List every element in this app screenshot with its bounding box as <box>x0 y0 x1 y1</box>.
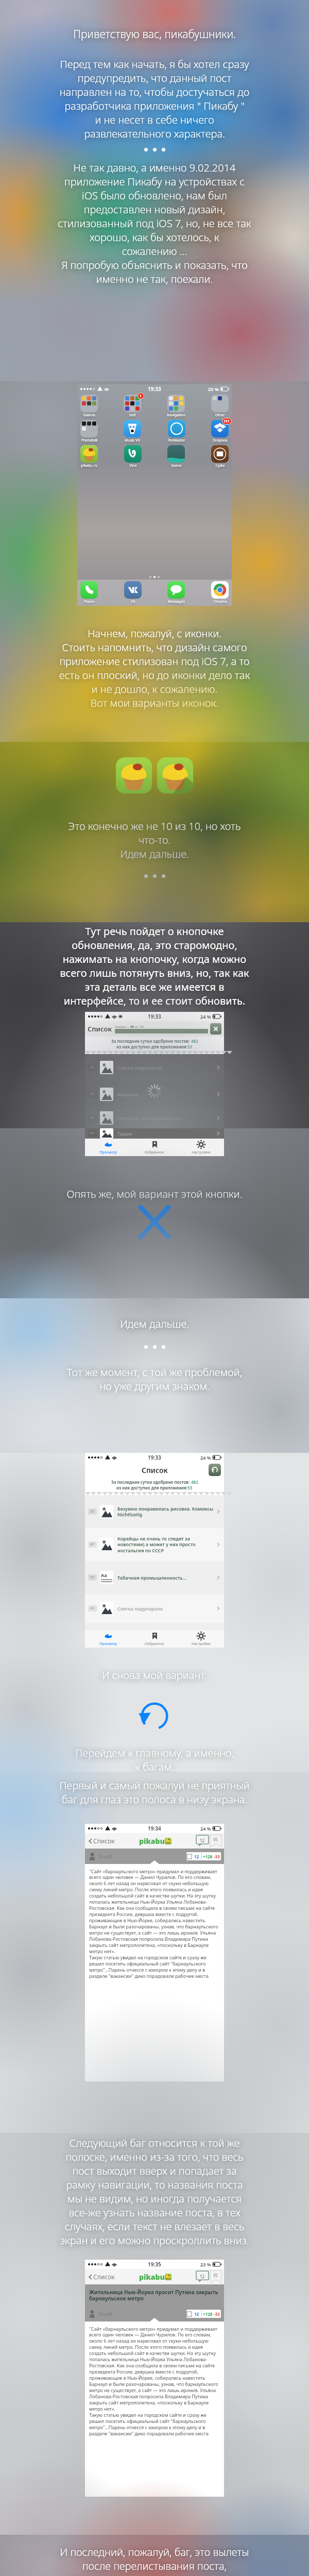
staticText: Music VK <box>125 438 140 443</box>
staticText: Загрузка — <box>115 1025 130 1029</box>
button[interactable]: В избранное <box>210 2270 221 2283</box>
staticText: VK <box>131 599 135 604</box>
staticText: 19:34 <box>148 1825 161 1832</box>
staticText: Phone <box>83 599 95 604</box>
staticText: Cydia <box>215 463 225 468</box>
button[interactable]: Просмотр <box>85 1139 131 1156</box>
button[interactable]: Комментарии <box>196 2271 209 2282</box>
staticText: 24 % <box>200 1825 211 1832</box>
staticText: Слегка подупороло <box>117 1064 216 1071</box>
staticText: Список <box>142 1465 168 1475</box>
staticText: PhotoEdit <box>81 438 98 443</box>
button[interactable]: 43 <box>85 1594 224 1623</box>
staticText: Приветствую вас, пикабушники. <box>3 27 306 42</box>
button[interactable]: Soft <box>124 395 141 418</box>
button[interactable]: 37 <box>85 1495 224 1528</box>
staticText: Soft <box>129 413 136 418</box>
staticText: 95 <box>213 1837 218 1842</box>
staticText: 47 <box>90 1542 95 1547</box>
staticText: "Сайт «барнаульского метро» придумал и п… <box>89 2326 220 2437</box>
staticText: Pristaff <box>98 1854 112 1859</box>
button[interactable]: В избранное <box>210 1835 221 1847</box>
staticText: 19:33 <box>148 1013 161 1020</box>
staticText: 12 <box>200 2274 205 2279</box>
staticText: 53 <box>187 1485 193 1490</box>
staticText: Безумно понравилась рисовка. Комиксы Nic… <box>117 1505 216 1518</box>
staticText: Тут речь пойдет о кнопочке обновления, д… <box>2 924 307 1008</box>
button[interactable]: Seene <box>167 445 185 468</box>
staticText: 24 % <box>200 1013 211 1020</box>
button[interactable]: Настройки <box>178 1139 224 1156</box>
staticText: 43 <box>90 1065 95 1070</box>
staticText: Перейдем к главному, а именно, к багам. <box>0 1746 309 1772</box>
staticText: 23 % <box>200 2261 211 2267</box>
staticText: FileMaster <box>167 438 185 443</box>
button[interactable]: Cydia <box>211 445 229 468</box>
button[interactable]: Chrome <box>211 581 229 604</box>
button[interactable]: Messages <box>167 581 185 604</box>
staticText: Не так давно, а именно 9.02.2014 приложе… <box>3 161 306 286</box>
button[interactable]: pikabu.ru <box>80 445 98 468</box>
staticText: 24 % <box>200 1454 211 1461</box>
staticText: Табачная промышленность... <box>117 1574 216 1581</box>
button[interactable]: Navigation <box>167 395 185 418</box>
staticText: -33 <box>214 2311 221 2317</box>
staticText: Просмотр <box>99 1641 117 1647</box>
staticText: 482 <box>191 1479 198 1485</box>
staticText: 19:35 <box>148 2261 161 2268</box>
button[interactable]: 107 <box>85 1128 224 1139</box>
button[interactable]: Other <box>211 395 229 418</box>
button[interactable]: 86 <box>85 1081 224 1108</box>
button[interactable]: Избранное <box>131 1630 178 1648</box>
staticText: 482 <box>191 1038 198 1044</box>
button[interactable]: Избранное <box>131 1139 178 1156</box>
staticText: +128 <box>202 1854 214 1859</box>
staticText: pikabu.ru <box>81 463 97 468</box>
staticText: За последние сутки одобрено постов: <box>111 1479 191 1485</box>
staticText: Америка... <box>117 1091 216 1097</box>
button[interactable]: Просмотр <box>85 1630 131 1648</box>
button[interactable]: FileMaster <box>167 420 185 443</box>
staticText: Слегка подупороло <box>117 1605 216 1612</box>
button[interactable]: VK <box>124 581 142 604</box>
button[interactable]: Обновить <box>209 1464 221 1476</box>
staticText: Просмотр <box>99 1150 117 1155</box>
staticText: 99 <box>130 1025 134 1029</box>
button[interactable]: 58 <box>85 1108 224 1128</box>
staticText: 151 <box>224 419 230 424</box>
staticText: pikabu <box>139 1836 165 1846</box>
staticText: 107 <box>89 1131 96 1136</box>
button[interactable]: Настройки <box>178 1630 224 1648</box>
button[interactable]: Music VK <box>124 420 141 443</box>
staticText: 12 <box>192 2311 201 2317</box>
staticText: "Сайт «барнаульского метро» придумал и п… <box>89 1868 220 1979</box>
staticText: pikabu <box>139 2272 165 2282</box>
button[interactable]: Список <box>88 1837 115 1845</box>
button[interactable]: PhotoEdit <box>80 420 98 443</box>
button[interactable]: Комментарии <box>196 1835 209 1846</box>
button[interactable]: Список <box>88 2273 115 2281</box>
staticText: 12 <box>200 1838 205 1843</box>
button[interactable]: Vine <box>124 445 142 468</box>
staticText: Первый и самый пожалуй не приятный баг д… <box>1 1778 308 1806</box>
staticText: из 100 <box>134 1025 144 1029</box>
staticText: Жительница Нью-Йорка просит Путина закры… <box>89 2289 220 2302</box>
staticText: 43 <box>90 1606 95 1611</box>
button[interactable]: 43 <box>85 1054 224 1081</box>
button[interactable]: Phone <box>80 581 98 604</box>
staticText: Настройки <box>192 1150 211 1155</box>
staticText: Перед тем как начать, я бы хотел сразу п… <box>3 57 306 141</box>
staticText: из них доступно для приложения: <box>116 1044 187 1049</box>
staticText: Aa <box>101 1572 107 1578</box>
button[interactable]: Dropbox <box>211 420 229 443</box>
staticText: И последний, пожалуй, баг, это вылеты по… <box>0 2545 309 2576</box>
button[interactable]: 37 <box>85 1561 224 1594</box>
staticText: 53 <box>187 1044 193 1049</box>
button[interactable]: Отменить загрузку <box>210 1023 221 1035</box>
staticText: Следующий баг относится к той же полоске… <box>1 2136 308 2247</box>
button[interactable]: Games <box>80 395 98 418</box>
staticText: 95 <box>213 2273 218 2278</box>
staticText: 37 <box>90 1509 95 1514</box>
staticText: 86 <box>90 1092 95 1097</box>
button[interactable]: 47 <box>85 1528 224 1561</box>
